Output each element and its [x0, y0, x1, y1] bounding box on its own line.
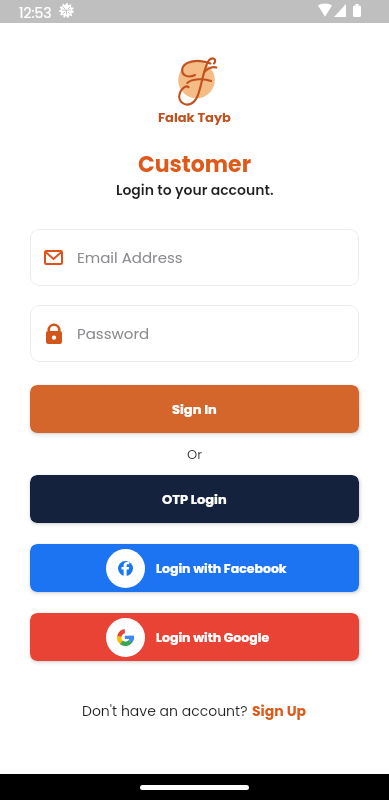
staticText: Falak Tayb — [158, 108, 231, 126]
button[interactable]: Sign Up — [252, 701, 307, 721]
button[interactable]: Sign In — [30, 385, 359, 433]
staticText: Login with Google — [156, 629, 270, 646]
staticText: Sign In — [172, 400, 217, 418]
staticText: 12:53 — [19, 3, 52, 23]
staticText: Password — [77, 323, 150, 344]
button[interactable]: Password — [30, 305, 359, 362]
button[interactable]: Login with Facebook — [30, 544, 359, 592]
other: Email — [44, 250, 63, 265]
button[interactable]: Login with Google — [30, 613, 359, 661]
other: Settings — [59, 3, 74, 18]
staticText: Or — [187, 445, 203, 463]
staticText: Email Address — [77, 247, 183, 268]
staticText: Customer — [138, 149, 252, 180]
button[interactable]: Email — [30, 229, 359, 286]
staticText: OTP Login — [162, 490, 227, 508]
staticText: Don't have an account? — [82, 701, 252, 721]
button[interactable]: OTP Login — [30, 475, 359, 523]
staticText: Login with Facebook — [156, 560, 287, 577]
staticText: Login to your account. — [116, 180, 274, 200]
other: Password — [46, 324, 62, 344]
